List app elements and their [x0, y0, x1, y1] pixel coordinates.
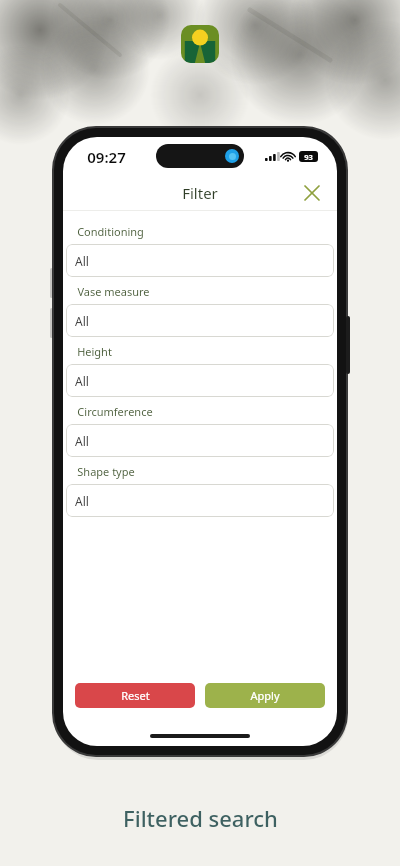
staticText: All [75, 313, 89, 329]
button[interactable]: Close [297, 178, 327, 208]
staticText: Height [77, 344, 112, 359]
staticText: Apply [250, 688, 280, 703]
button[interactable]: All [66, 424, 334, 457]
staticText: 09:27 [87, 147, 126, 167]
staticText: 93 [304, 152, 313, 162]
staticText: Conditioning [77, 224, 144, 239]
button[interactable]: All [66, 364, 334, 397]
staticText: All [75, 253, 89, 269]
staticText: Filtered search [123, 803, 278, 833]
staticText: Reset [121, 688, 150, 703]
button[interactable]: Reset [75, 683, 195, 708]
button[interactable]: All [66, 244, 334, 277]
staticText: All [75, 493, 89, 509]
staticText: Circumference [77, 404, 153, 419]
button[interactable]: All [66, 304, 334, 337]
staticText: Vase measure [77, 284, 150, 299]
button[interactable]: All [66, 484, 334, 517]
staticText: Filter [182, 183, 218, 203]
staticText: Shape type [77, 464, 135, 479]
staticText: All [75, 373, 89, 389]
staticText: All [75, 433, 89, 449]
button[interactable]: Apply [205, 683, 325, 708]
